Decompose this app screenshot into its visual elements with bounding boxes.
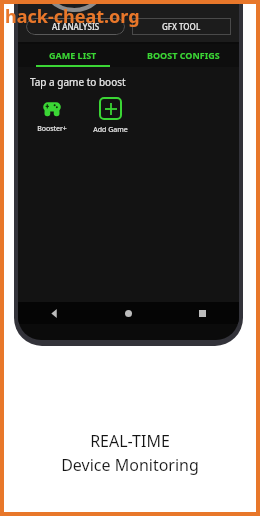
staticText: REAL-TIME: [90, 430, 170, 452]
button[interactable]: Home: [91, 302, 165, 324]
staticText: Device Monitoring: [61, 454, 199, 476]
button[interactable]: AI ANALYSIS: [26, 18, 125, 35]
button[interactable]: BOOST CONFIGS: [128, 44, 239, 65]
button[interactable]: GAME LIST: [18, 44, 128, 65]
button[interactable]: Booster+: [30, 97, 74, 134]
staticText: GAME LIST: [49, 49, 97, 61]
staticText: GFX TOOL: [162, 21, 201, 32]
staticText: AI ANALYSIS: [52, 21, 100, 32]
staticText: hack-cheat.org: [5, 4, 140, 29]
staticText: Tap a game to boost: [30, 75, 126, 89]
button[interactable]: GFX TOOL: [132, 18, 231, 35]
staticText: Add Game: [93, 125, 128, 135]
staticText: BOOST CONFIGS: [147, 49, 220, 61]
button[interactable]: Recents: [165, 302, 239, 324]
staticText: Booster+: [37, 124, 67, 134]
button[interactable]: Back: [18, 302, 91, 324]
button[interactable]: Add Game: [88, 97, 132, 135]
